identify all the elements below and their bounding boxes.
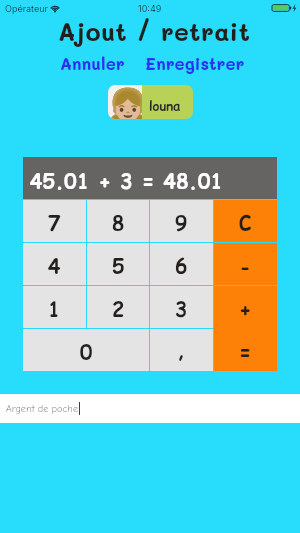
staticText: Annuler bbox=[60, 52, 125, 74]
button[interactable]: 5 bbox=[87, 243, 149, 285]
button[interactable]: 3 bbox=[150, 286, 213, 328]
button[interactable]: 7 bbox=[23, 200, 86, 242]
button[interactable]: - bbox=[214, 243, 277, 285]
staticText: Enregistrer bbox=[145, 52, 245, 74]
button[interactable]: Argent de poche bbox=[0, 394, 300, 423]
staticText: = bbox=[239, 339, 252, 367]
staticText: 4 bbox=[48, 253, 61, 281]
staticText: - bbox=[239, 253, 252, 281]
staticText: C bbox=[239, 210, 252, 238]
staticText: 0 bbox=[80, 339, 93, 367]
button[interactable]: C bbox=[214, 200, 277, 242]
button[interactable]: Annuler bbox=[58, 52, 127, 74]
staticText: 6 bbox=[175, 253, 188, 281]
button[interactable]: Enregistrer bbox=[143, 52, 247, 74]
staticText: Ajout / retrait bbox=[4, 15, 300, 47]
staticText: 5 bbox=[112, 253, 125, 281]
staticText: + bbox=[239, 296, 252, 324]
staticText: 10:49 bbox=[138, 3, 162, 14]
button[interactable]: 6 bbox=[150, 243, 213, 285]
staticText: 9 bbox=[175, 210, 188, 238]
staticText: 3 bbox=[175, 296, 188, 324]
staticText: Opérateur bbox=[5, 3, 48, 14]
staticText: 👧🏼 bbox=[108, 86, 142, 119]
staticText: 7 bbox=[48, 210, 61, 238]
staticText: Argent de poche bbox=[6, 403, 79, 415]
button[interactable]: 👧🏼 bbox=[108, 85, 193, 119]
staticText: 1 bbox=[48, 296, 61, 324]
button[interactable]: 8 bbox=[87, 200, 149, 242]
button[interactable]: 9 bbox=[150, 200, 213, 242]
staticText: louna bbox=[149, 97, 181, 115]
button[interactable]: 2 bbox=[87, 286, 149, 328]
button[interactable]: 45.01 + 3 = 48.01 bbox=[23, 157, 277, 199]
button[interactable]: + bbox=[214, 286, 277, 328]
button[interactable]: , bbox=[150, 329, 213, 371]
button[interactable]: 1 bbox=[23, 286, 86, 328]
button[interactable]: 4 bbox=[23, 243, 86, 285]
staticText: , bbox=[177, 336, 186, 364]
staticText: 2 bbox=[112, 296, 125, 324]
staticText: 8 bbox=[112, 210, 125, 238]
staticText: 45.01 + 3 = 48.01 bbox=[30, 168, 224, 196]
button[interactable]: = bbox=[214, 328, 277, 371]
button[interactable]: 0 bbox=[23, 329, 149, 371]
